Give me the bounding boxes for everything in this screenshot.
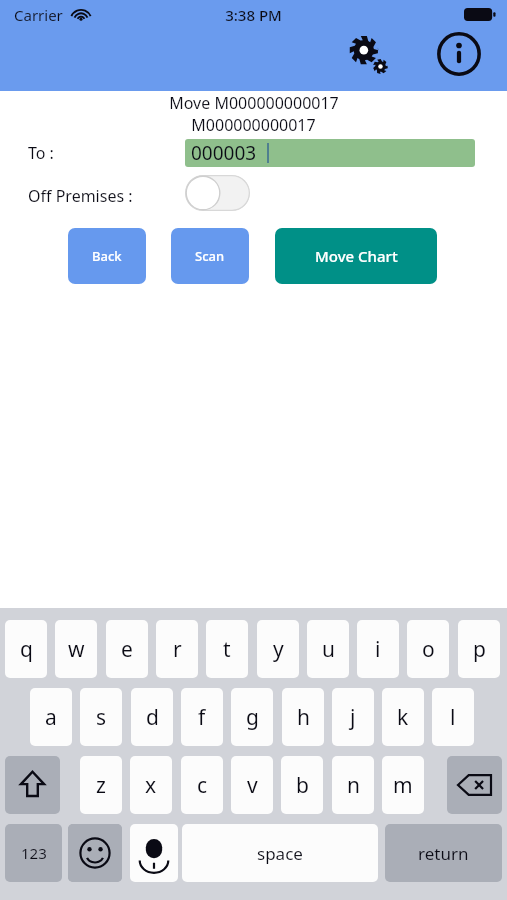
staticText: To :	[28, 142, 54, 164]
staticText: z	[96, 771, 106, 800]
button[interactable]: Shift	[5, 756, 60, 814]
staticText: q	[20, 635, 33, 664]
button[interactable]: Emoji	[68, 824, 122, 882]
button[interactable]: Info	[433, 30, 485, 78]
staticText: n	[347, 771, 360, 800]
button[interactable]: k	[382, 688, 424, 746]
button[interactable]: u	[307, 620, 349, 678]
button[interactable]: m	[382, 756, 424, 814]
staticText: Scan	[195, 247, 225, 265]
staticText: x	[145, 771, 157, 800]
button[interactable]: w	[55, 620, 97, 678]
button[interactable]: space	[182, 824, 378, 882]
staticText: Carrier	[14, 5, 63, 25]
staticText: w	[68, 635, 85, 664]
staticText: 123	[21, 843, 47, 863]
staticText: p	[473, 635, 486, 664]
staticText: Off Premises :	[28, 185, 133, 207]
button[interactable]: Settings	[342, 30, 394, 78]
button[interactable]: 000003	[185, 139, 475, 167]
button[interactable]: t	[206, 620, 248, 678]
staticText: j	[350, 703, 356, 732]
staticText: t	[223, 635, 231, 664]
button[interactable]: Backspace	[447, 756, 502, 814]
button[interactable]: Back	[68, 228, 146, 284]
staticText: Move M000000000017	[169, 92, 339, 114]
button[interactable]: c	[181, 756, 223, 814]
staticText: 3:38 PM	[225, 5, 282, 25]
button[interactable]: f	[181, 688, 223, 746]
staticText: f	[198, 703, 206, 732]
button[interactable]: n	[332, 756, 374, 814]
button[interactable]: x	[130, 756, 172, 814]
button[interactable]: q	[5, 620, 47, 678]
button[interactable]: g	[231, 688, 273, 746]
button[interactable]: Dictation	[130, 824, 178, 882]
staticText: h	[297, 703, 310, 732]
button[interactable]: Emoji	[68, 824, 122, 882]
staticText: 000003	[191, 140, 257, 166]
staticText: l	[450, 703, 456, 732]
button[interactable]: Scan	[171, 228, 249, 284]
staticText: y	[273, 635, 284, 664]
staticText: o	[422, 635, 435, 664]
staticText: k	[397, 703, 409, 732]
button[interactable]: z	[80, 756, 122, 814]
staticText: g	[246, 703, 259, 732]
button[interactable]: r	[156, 620, 198, 678]
staticText: c	[197, 771, 208, 800]
button[interactable]: d	[131, 688, 173, 746]
staticText: b	[296, 771, 309, 800]
button[interactable]: y	[257, 620, 299, 678]
staticText: r	[173, 635, 182, 664]
staticText: a	[45, 703, 57, 732]
staticText: s	[96, 703, 107, 732]
staticText: M000000000017	[191, 114, 316, 136]
button[interactable]: a	[30, 688, 72, 746]
staticText: u	[322, 635, 335, 664]
staticText: return	[418, 842, 469, 865]
staticText: e	[121, 635, 133, 664]
staticText: m	[393, 771, 413, 800]
staticText: Back	[92, 247, 122, 265]
staticText: d	[146, 703, 159, 732]
button[interactable]: j	[332, 688, 374, 746]
button[interactable]: Off Premises toggle	[185, 175, 250, 211]
button[interactable]: s	[80, 688, 122, 746]
staticText: i	[375, 635, 381, 664]
button[interactable]: i	[357, 620, 399, 678]
button[interactable]: v	[231, 756, 273, 814]
button[interactable]: h	[282, 688, 324, 746]
staticText: Move Chart	[315, 246, 398, 266]
button[interactable]: Move Chart	[275, 228, 437, 284]
button[interactable]: l	[432, 688, 474, 746]
button[interactable]: b	[281, 756, 323, 814]
button[interactable]: e	[106, 620, 148, 678]
staticText: space	[257, 842, 303, 865]
button[interactable]: o	[407, 620, 449, 678]
button[interactable]: 123	[5, 824, 62, 882]
button[interactable]: return	[385, 824, 502, 882]
button[interactable]: p	[458, 620, 500, 678]
staticText: v	[247, 771, 258, 800]
